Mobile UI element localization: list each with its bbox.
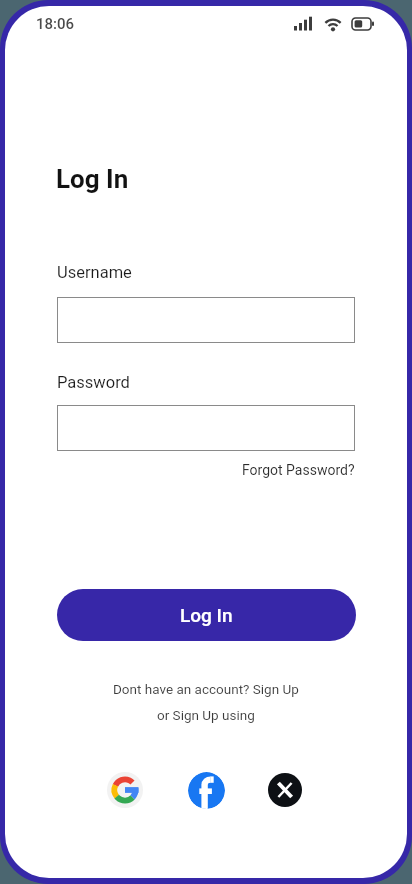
- button[interactable]: Dont have an account? Sign Up: [113, 681, 299, 697]
- staticText: or Sign Up using: [157, 707, 255, 723]
- button[interactable]: Log In: [57, 589, 356, 641]
- staticText: Log In: [56, 164, 129, 194]
- staticText: Password: [57, 373, 130, 392]
- button[interactable]: [268, 773, 302, 807]
- staticText: Username: [57, 263, 132, 282]
- staticText: Log In: [180, 604, 233, 626]
- staticText: 18:06: [36, 15, 75, 33]
- button[interactable]: [57, 405, 355, 451]
- button[interactable]: [57, 297, 355, 343]
- button[interactable]: [188, 772, 225, 809]
- button[interactable]: Forgot Password?: [242, 462, 355, 478]
- button[interactable]: [107, 772, 143, 808]
